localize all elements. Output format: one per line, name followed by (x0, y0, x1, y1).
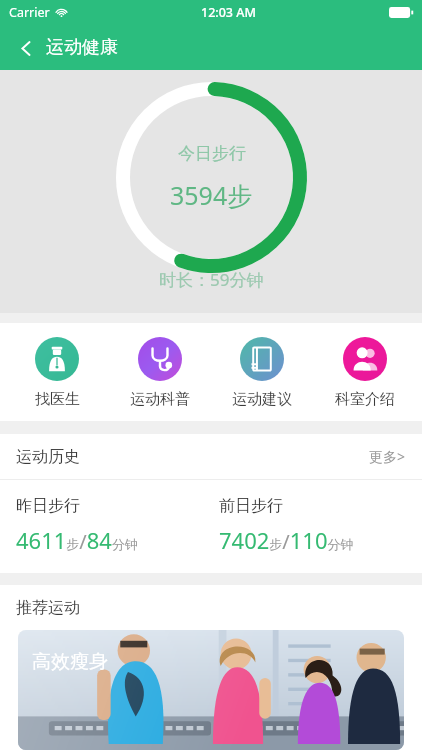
staticText: Carrier (9, 4, 50, 21)
button[interactable]: 科室介绍 (319, 335, 411, 411)
button[interactable]: 运动历史 (0, 434, 422, 479)
button[interactable]: 运动科普 (114, 335, 206, 411)
staticText: 时长：59分钟 (159, 268, 264, 291)
staticText: 高效瘦身 (32, 650, 108, 674)
staticText: 今日步行 (178, 143, 246, 164)
staticText: 运动建议 (232, 390, 292, 409)
staticText: 运动科普 (130, 390, 190, 409)
staticText: 4611步/84分钟 (16, 525, 138, 555)
staticText: 找医生 (35, 390, 80, 409)
button[interactable]: 前日步行 (219, 496, 422, 555)
button[interactable]: 运动建议 (216, 335, 308, 411)
staticText: 推荐运动 (16, 598, 80, 618)
button[interactable]: 高效瘦身 (18, 630, 404, 750)
staticText: 12:03 AM (201, 4, 256, 21)
staticText: 前日步行 (219, 496, 283, 516)
staticText: 昨日步行 (16, 496, 80, 516)
staticText: 运动健康 (46, 36, 118, 59)
button[interactable]: 找医生 (11, 335, 103, 411)
staticText: 3594步 (170, 178, 253, 212)
staticText: 7402步/110分钟 (219, 525, 354, 555)
staticText: 科室介绍 (335, 390, 395, 409)
staticText: 运动历史 (16, 447, 80, 467)
button[interactable]: Back (8, 30, 44, 66)
button[interactable]: 昨日步行 (16, 496, 219, 555)
staticText: 更多> (369, 447, 406, 466)
